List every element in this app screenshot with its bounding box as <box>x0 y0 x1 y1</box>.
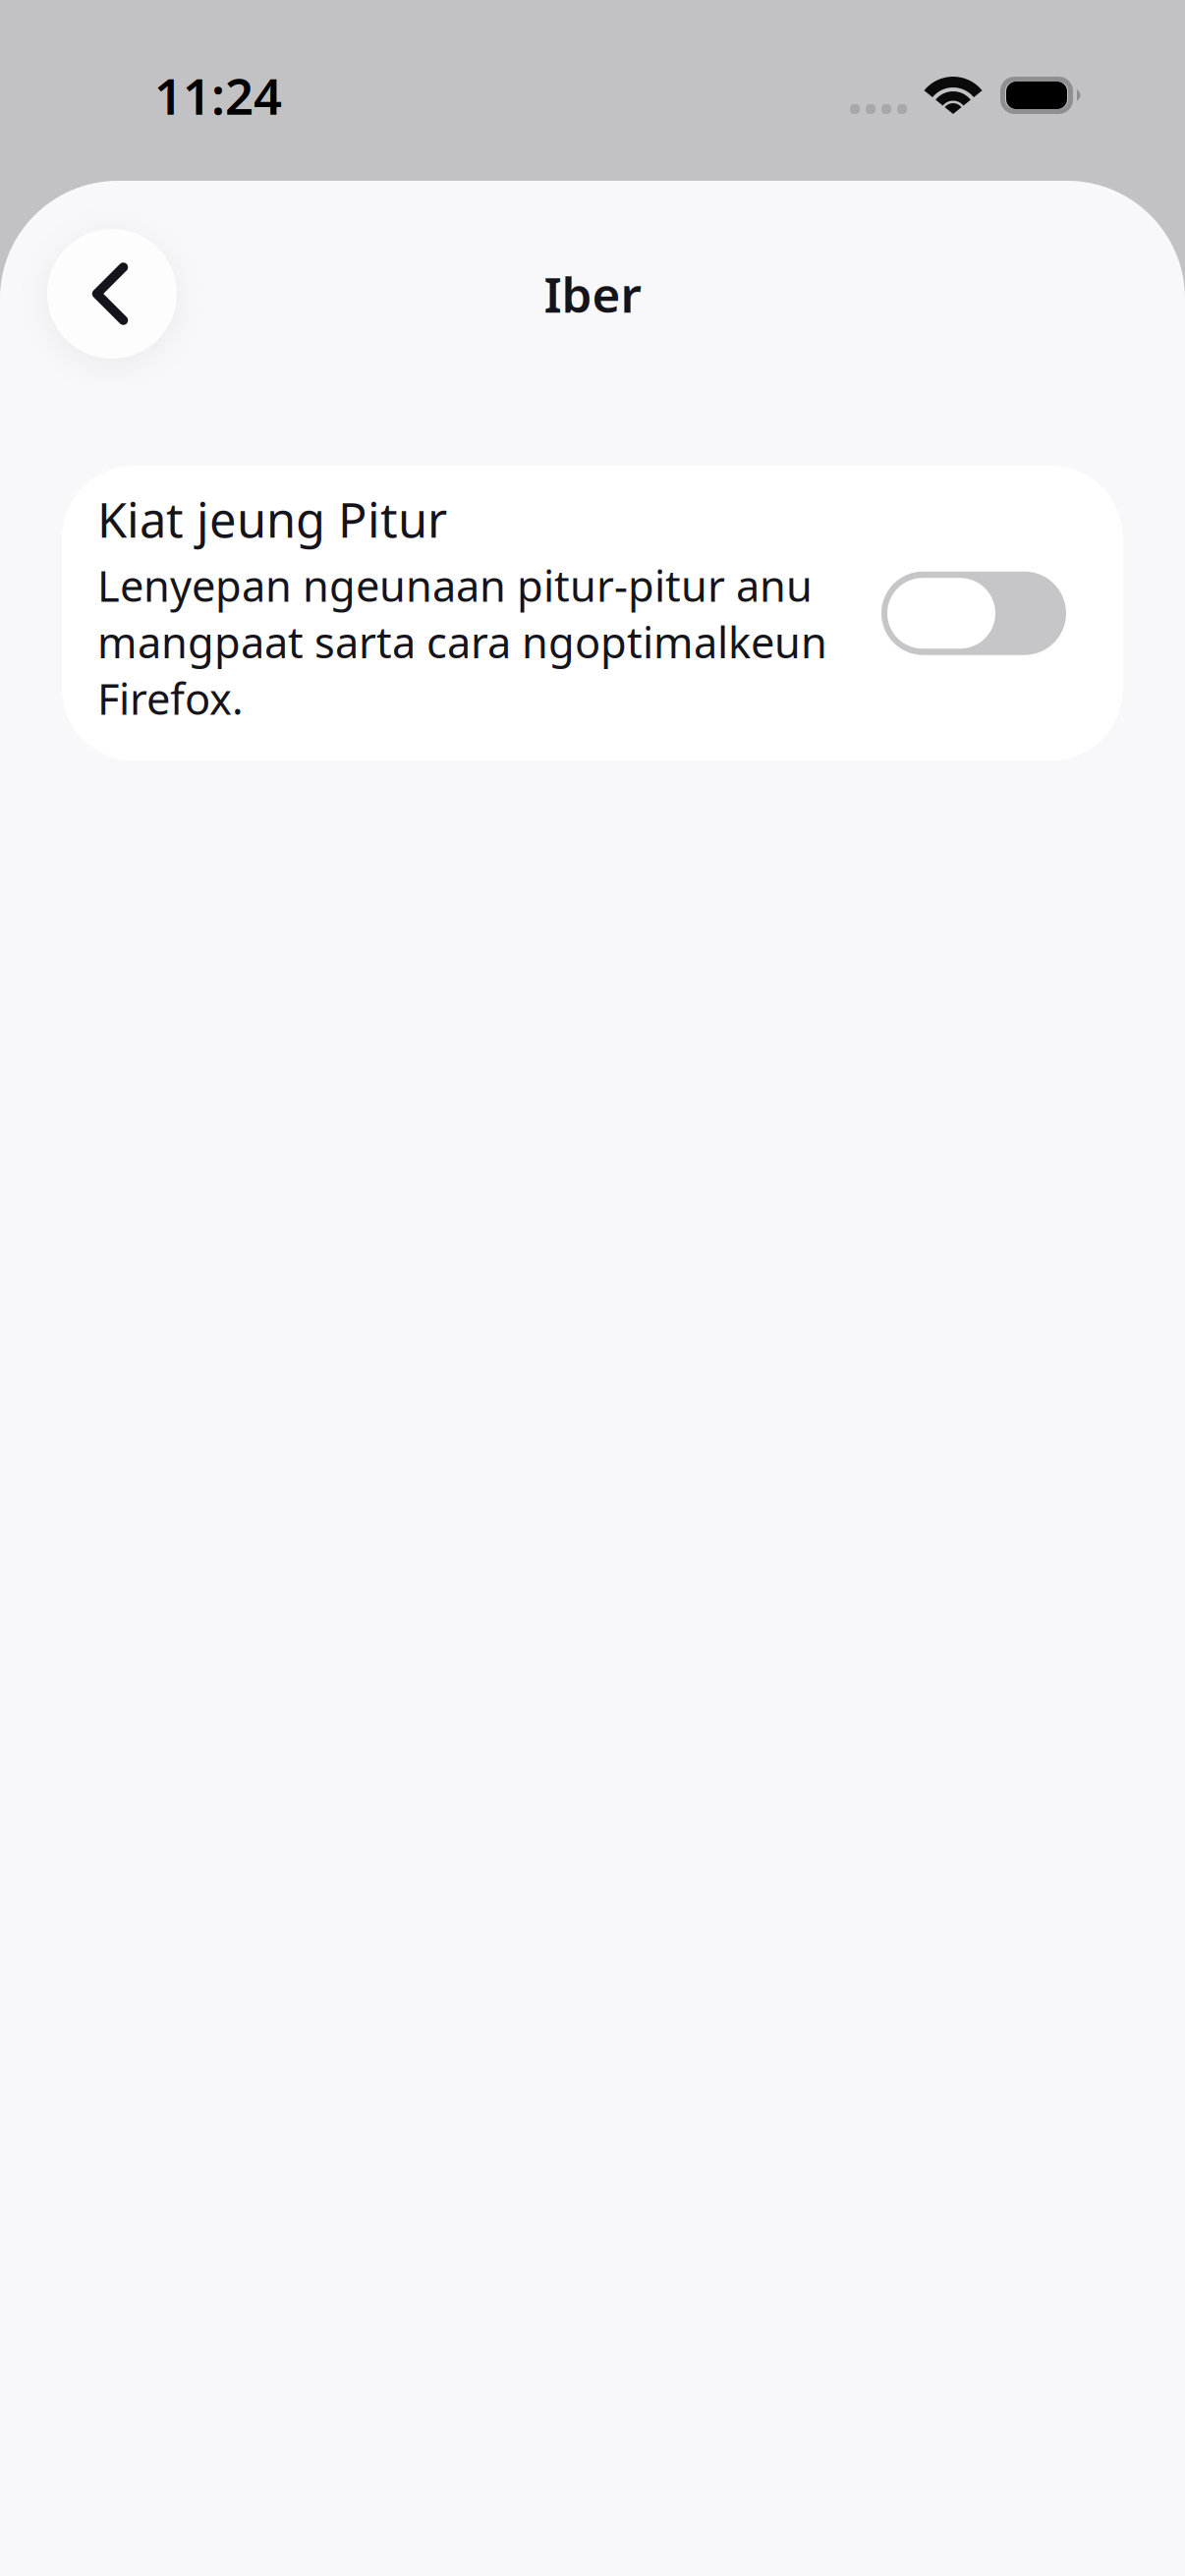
staticText: Kiat jeung Pitur <box>97 487 447 551</box>
staticText: Iber <box>544 262 641 326</box>
button[interactable]: Kiat jeung Pitur, pareum <box>881 571 1066 655</box>
staticText: Lenyepan ngeunaan pitur-pitur anu mangpa… <box>97 557 827 726</box>
staticText: 11:24 <box>154 62 282 128</box>
button[interactable]: Tukang <box>47 229 177 359</box>
